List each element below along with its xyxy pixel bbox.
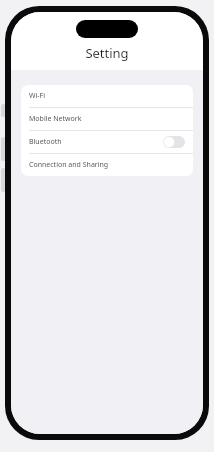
staticText: Bluetooth — [29, 137, 62, 147]
staticText: Connection and Sharing — [29, 160, 109, 170]
staticText: Mobile Network — [29, 114, 82, 124]
button[interactable]: Mobile Network — [21, 108, 193, 130]
button[interactable]: Wi-Fi — [21, 85, 193, 107]
button[interactable]: Bluetooth — [21, 131, 193, 153]
button[interactable]: Connection and Sharing — [21, 154, 193, 176]
staticText: Wi-Fi — [29, 91, 46, 101]
button[interactable]: Bluetooth toggle, off — [163, 136, 185, 148]
staticText: Setting — [85, 44, 129, 62]
